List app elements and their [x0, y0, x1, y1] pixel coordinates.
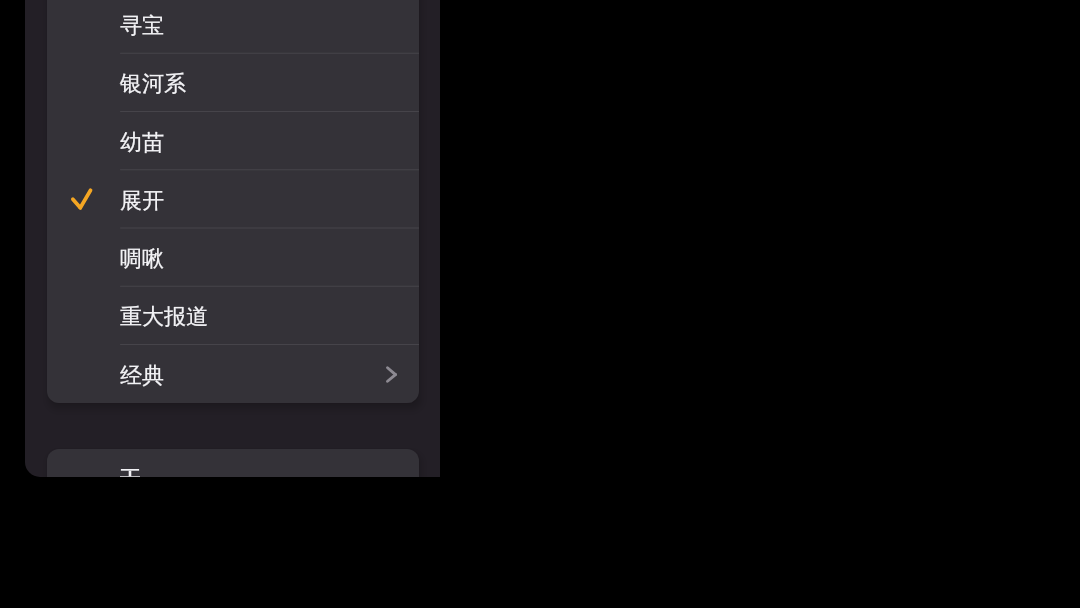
button[interactable]: 经典: [47, 345, 419, 403]
button[interactable]: 银河系: [47, 53, 419, 111]
button[interactable]: 工作: [47, 449, 419, 477]
staticText: 寻宝: [120, 12, 164, 40]
button[interactable]: Selected: [47, 170, 419, 228]
other: Open submenu: [379, 363, 401, 385]
button[interactable]: 幼苗: [47, 112, 419, 170]
staticText: 幼苗: [120, 129, 164, 157]
button[interactable]: 啁啾: [47, 228, 419, 286]
other: Selected: [70, 185, 98, 213]
staticText: 经典: [120, 362, 164, 390]
button[interactable]: 重大报道: [47, 286, 419, 344]
staticText: 啁啾: [120, 245, 164, 273]
staticText: 银河系: [120, 70, 186, 98]
staticText: 展开: [120, 187, 164, 215]
button[interactable]: 寻宝: [47, 0, 419, 53]
staticText: 重大报道: [120, 303, 208, 331]
